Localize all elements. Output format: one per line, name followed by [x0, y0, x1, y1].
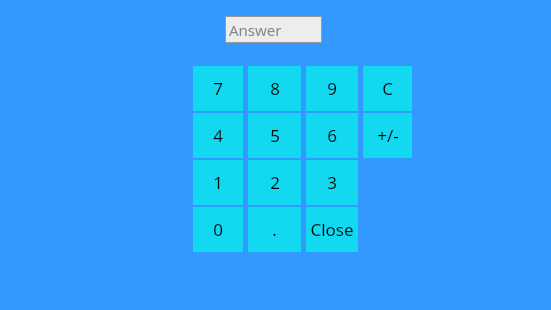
staticText: 8	[270, 77, 280, 100]
staticText: +/-	[377, 124, 399, 147]
button[interactable]: +/-	[363, 113, 412, 158]
staticText: 5	[270, 124, 280, 147]
button[interactable]: 9	[306, 66, 358, 111]
staticText: 6	[327, 124, 337, 147]
button[interactable]: C	[363, 66, 412, 111]
staticText: Answer	[229, 20, 282, 40]
staticText: C	[382, 77, 393, 100]
button[interactable]: Close	[306, 207, 358, 252]
staticText: 1	[213, 171, 223, 194]
staticText: 3	[327, 171, 337, 194]
staticText: 2	[270, 171, 280, 194]
staticText: .	[272, 218, 277, 241]
staticText: Close	[310, 218, 354, 241]
button[interactable]: 4	[193, 113, 243, 158]
staticText: 7	[213, 77, 223, 100]
button[interactable]: 1	[193, 160, 243, 205]
button[interactable]: 2	[248, 160, 301, 205]
button[interactable]: 8	[248, 66, 301, 111]
button[interactable]: 6	[306, 113, 358, 158]
staticText: 4	[213, 124, 223, 147]
button[interactable]: 5	[248, 113, 301, 158]
staticText: 9	[327, 77, 337, 100]
button[interactable]: 7	[193, 66, 243, 111]
staticText: 0	[213, 218, 223, 241]
button[interactable]: Answer	[225, 16, 322, 43]
button[interactable]: .	[248, 207, 301, 252]
button[interactable]: 0	[193, 207, 243, 252]
button[interactable]: 3	[306, 160, 358, 205]
